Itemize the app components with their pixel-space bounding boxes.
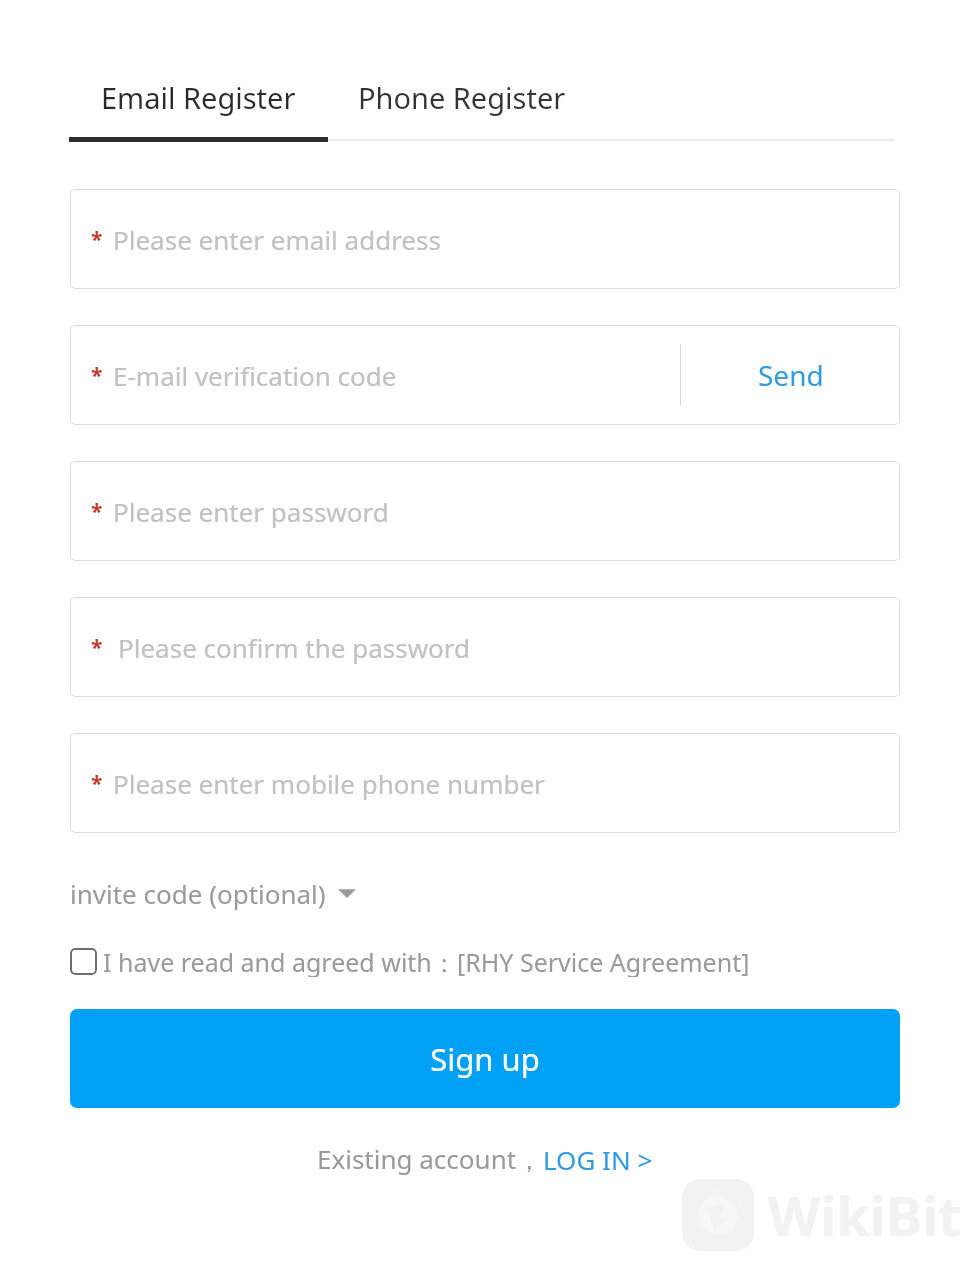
staticText: *	[91, 225, 103, 254]
button[interactable]: Phone Register	[328, 57, 596, 137]
button[interactable]: *	[70, 189, 900, 289]
button[interactable]: [RHY Service Agreement]	[457, 945, 750, 977]
staticText: I have read and agreed with：	[103, 945, 457, 977]
staticText: Phone Register	[358, 78, 566, 117]
button[interactable]: *	[70, 597, 900, 697]
staticText: *	[91, 769, 103, 798]
staticText: Sign up	[430, 1038, 540, 1080]
staticText: invite code (optional)	[70, 876, 326, 911]
button[interactable]: *	[70, 733, 900, 833]
staticText: E-mail verification code	[113, 358, 397, 393]
staticText: Please enter email address	[113, 222, 441, 257]
staticText: Email Register	[101, 78, 296, 117]
staticText: Please confirm the password	[118, 630, 471, 665]
button[interactable]: Send	[681, 325, 900, 425]
staticText: Send	[758, 356, 824, 394]
staticText: LOG IN >	[543, 1142, 653, 1177]
staticText: Please enter password	[113, 494, 389, 529]
button[interactable]: invite code (optional)	[70, 873, 356, 913]
staticText: Please enter mobile phone number	[113, 766, 545, 801]
button[interactable]: *	[70, 461, 900, 561]
button[interactable]: Sign up	[70, 1009, 900, 1108]
button[interactable]: Email Register	[69, 57, 328, 137]
staticText: *	[91, 361, 103, 390]
staticText: WikiBit	[768, 1178, 962, 1252]
staticText: Existing account，	[317, 1141, 543, 1177]
staticText: [RHY Service Agreement]	[457, 945, 750, 977]
button[interactable]: Agree to terms checkbox	[70, 948, 97, 975]
button[interactable]: LOG IN >	[543, 1142, 653, 1177]
button[interactable]: *	[70, 325, 900, 425]
staticText: *	[91, 633, 103, 662]
staticText: *	[91, 497, 103, 526]
